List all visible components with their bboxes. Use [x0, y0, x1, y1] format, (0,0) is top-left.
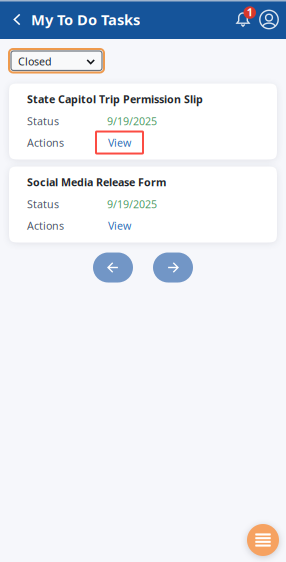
- staticText: 9/19/2025: [107, 114, 157, 128]
- staticText: Status: [27, 114, 59, 128]
- button[interactable]: Menu: [247, 524, 279, 556]
- button[interactable]: View: [96, 131, 143, 153]
- button[interactable]: Back: [0, 0, 24, 39]
- staticText: View: [108, 135, 131, 150]
- button[interactable]: Notifications: [230, 0, 256, 39]
- button[interactable]: Account: [256, 0, 282, 39]
- staticText: Closed: [18, 54, 52, 68]
- staticText: 1: [247, 5, 253, 19]
- staticText: Status: [27, 197, 59, 211]
- button[interactable]: Previous page: [93, 252, 133, 282]
- staticText: 9/19/2025: [107, 197, 157, 211]
- staticText: Social Media Release Form: [27, 175, 166, 189]
- button[interactable]: Closed: [9, 49, 104, 72]
- staticText: Actions: [27, 218, 64, 233]
- staticText: Actions: [27, 135, 64, 150]
- staticText: View: [108, 218, 131, 233]
- staticText: State Capitol Trip Permission Slip: [27, 92, 203, 106]
- button[interactable]: Next page: [153, 252, 193, 282]
- staticText: My To Do Tasks: [31, 10, 140, 29]
- button[interactable]: View: [96, 214, 143, 236]
